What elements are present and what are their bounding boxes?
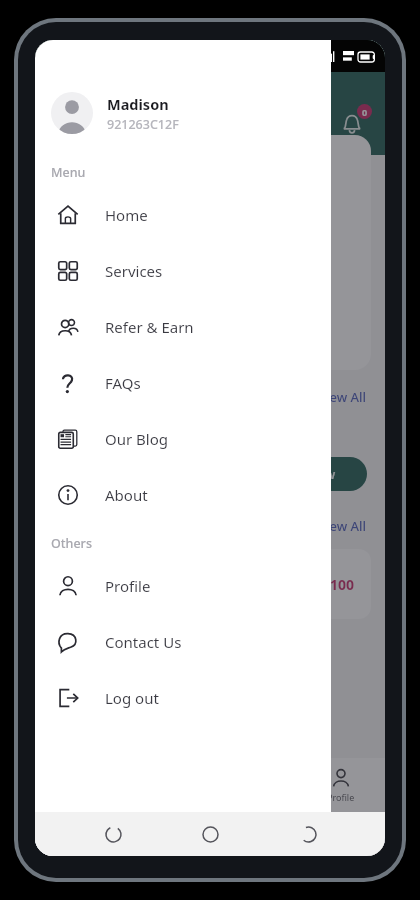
button[interactable]: Our Blog — [35, 411, 331, 467]
staticText: Others — [51, 535, 92, 552]
staticText: About — [105, 485, 148, 505]
button[interactable]: View — [275, 457, 367, 491]
staticText: 921263C12F — [107, 116, 179, 133]
staticText: 0 — [362, 106, 368, 118]
staticText: Our Blog — [105, 429, 169, 449]
button[interactable]: Profile — [297, 758, 385, 812]
staticText: Refer & Earn — [105, 317, 194, 337]
button[interactable]: View All — [318, 388, 367, 406]
staticText: Home — [105, 205, 148, 225]
button[interactable]: View All — [318, 517, 367, 535]
staticText: Offers — [53, 424, 96, 443]
button[interactable]: Home — [35, 187, 331, 243]
button[interactable]: Home — [190, 814, 230, 854]
button[interactable]: About — [35, 467, 331, 523]
button[interactable]: Contact Us — [35, 614, 331, 670]
button[interactable]: Profile — [35, 558, 331, 614]
button[interactable]: Log out — [35, 670, 331, 726]
button[interactable]: Back — [288, 814, 328, 854]
button[interactable]: Madison — [35, 86, 331, 140]
staticText: Profile — [327, 791, 355, 803]
button[interactable]: Services — [35, 243, 331, 299]
button[interactable]: Refer & Earn — [35, 299, 331, 355]
staticText: Menu — [51, 164, 86, 181]
button[interactable]: Recents — [93, 814, 133, 854]
staticText: Contact Us — [105, 632, 182, 652]
staticText: Log out — [105, 688, 159, 708]
staticText: ₹100 — [322, 575, 355, 594]
button[interactable]: Notifications — [335, 107, 369, 141]
staticText: FAQs — [105, 373, 141, 393]
staticText: Madison — [107, 94, 169, 114]
staticText: Profile — [105, 576, 151, 596]
button[interactable]: FAQs — [35, 355, 331, 411]
staticText: Services — [105, 261, 163, 281]
staticText: View — [306, 465, 336, 483]
